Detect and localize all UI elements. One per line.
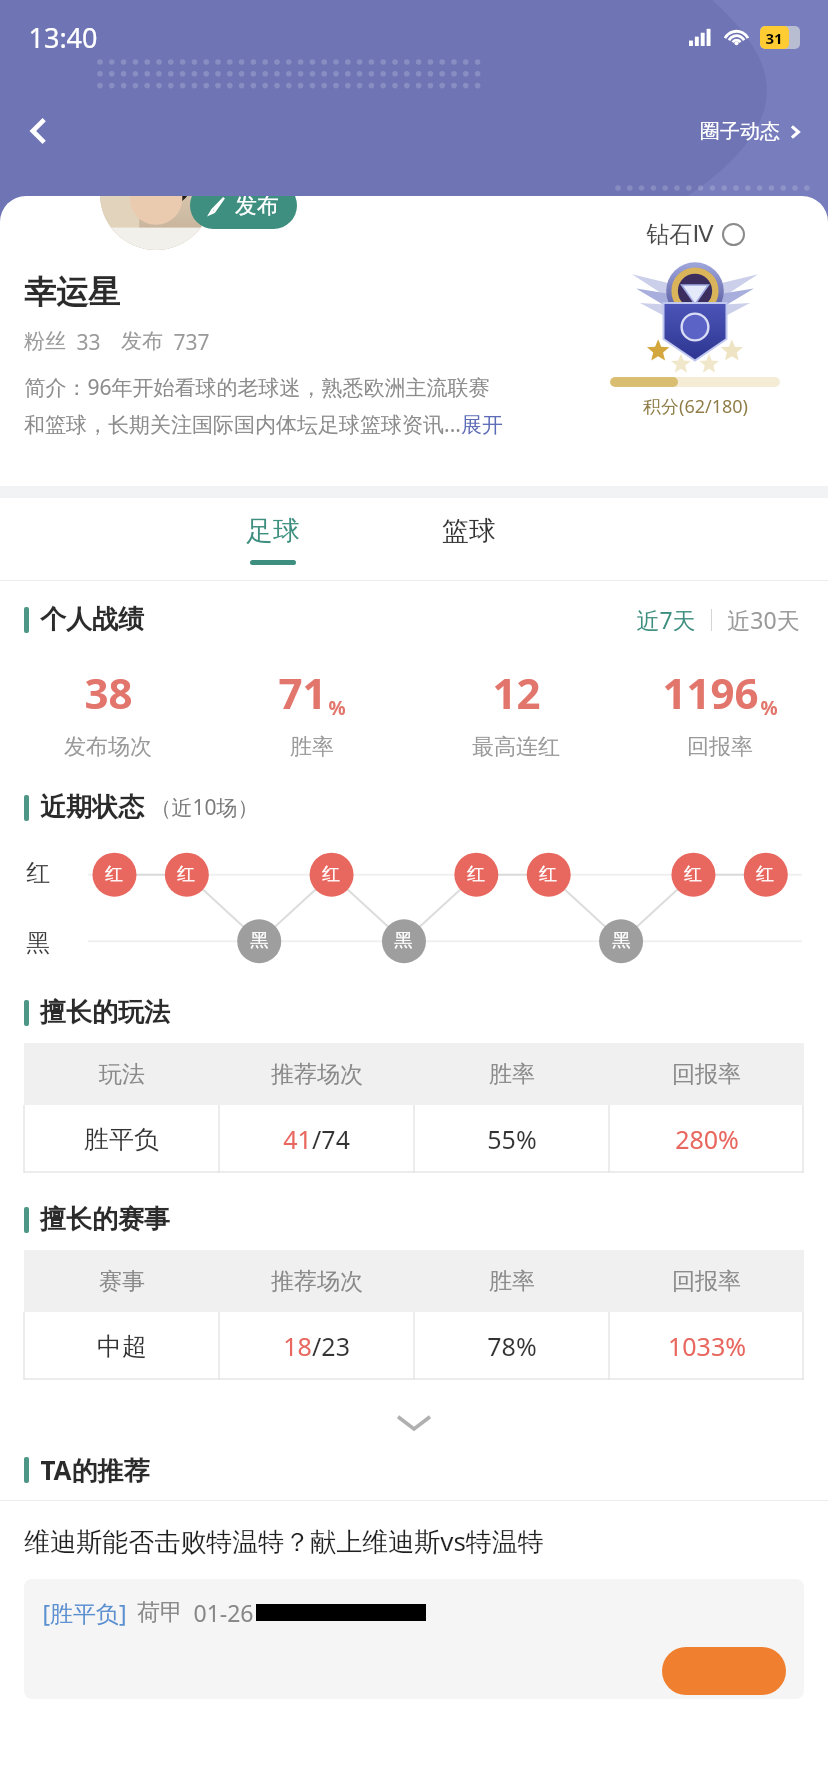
staticText: 发布: [235, 196, 279, 220]
staticText: 维迪斯能否击败特温特？献上维迪斯vs特温特: [24, 1523, 544, 1559]
staticText: 01-26: [193, 1597, 254, 1628]
staticText: 红: [26, 858, 50, 888]
staticText: 55%: [487, 1122, 537, 1156]
staticText: 黑: [250, 929, 268, 952]
staticText: %: [328, 695, 346, 721]
staticText: 胜率: [489, 1267, 535, 1296]
staticText: 展开: [461, 412, 503, 438]
staticText: 擅长的玩法: [40, 996, 170, 1029]
button[interactable]: 近30天: [723, 604, 804, 635]
staticText: 钻石Ⅳ: [646, 220, 714, 249]
staticText: 发布场次: [64, 733, 152, 761]
staticText: 1033%: [668, 1329, 746, 1363]
button[interactable]: View recommendation: [662, 1647, 786, 1695]
button[interactable]: Expand: [0, 1394, 828, 1450]
staticText: 回报率: [672, 1060, 741, 1089]
staticText: 71: [278, 664, 327, 721]
button[interactable]: [胜平负]: [24, 1579, 804, 1699]
staticText: 近30天: [727, 604, 800, 635]
staticText: 红: [467, 863, 485, 886]
staticText: 玩法: [99, 1060, 145, 1089]
button[interactable]: Avatar: [100, 196, 212, 250]
staticText: 发布: [121, 328, 163, 354]
staticText: 红: [322, 863, 340, 886]
staticText: 黑: [612, 929, 630, 952]
staticText: 推荐场次: [271, 1267, 363, 1296]
staticText: 个人战绩: [40, 603, 144, 636]
staticText: 荷甲: [137, 1598, 183, 1627]
staticText: 78%: [487, 1329, 537, 1363]
staticText: [胜平负]: [42, 1597, 127, 1628]
staticText: 33: [76, 328, 101, 357]
staticText: 近期状态: [40, 791, 144, 824]
button[interactable]: 近7天: [632, 604, 700, 635]
staticText: 简介：96年开始看球的老球迷，熟悉欧洲主流联赛: [24, 373, 490, 402]
staticText: 280%: [675, 1122, 739, 1156]
staticText: 红: [539, 863, 557, 886]
staticText: 最高连红: [472, 733, 560, 761]
staticText: 12: [492, 664, 541, 721]
button[interactable]: Back: [10, 102, 68, 160]
staticText: 回报率: [672, 1267, 741, 1296]
staticText: 和篮球，长期关注国际国内体坛足球篮球资讯...: [24, 410, 461, 439]
staticText: 回报率: [687, 733, 753, 761]
staticText: 红: [177, 863, 195, 886]
staticText: 18: [283, 1329, 312, 1363]
staticText: 幸运星: [24, 272, 120, 312]
button[interactable]: 发布: [190, 196, 297, 229]
staticText: 38: [84, 664, 133, 721]
staticText: %: [760, 695, 778, 721]
staticText: 推荐场次: [271, 1060, 363, 1089]
staticText: 足球: [246, 514, 300, 548]
button[interactable]: 圈子动态: [696, 113, 806, 150]
staticText: 31: [765, 28, 783, 48]
staticText: 积分(62/180): [643, 394, 748, 419]
staticText: /74: [312, 1122, 350, 1156]
staticText: 圈子动态: [700, 119, 780, 144]
staticText: 胜平负: [84, 1124, 159, 1155]
staticText: 胜率: [489, 1060, 535, 1089]
staticText: 红: [756, 863, 774, 886]
staticText: TA的推荐: [40, 1452, 150, 1488]
staticText: 红: [105, 863, 123, 886]
staticText: 中超: [97, 1331, 147, 1362]
button[interactable]: 展开: [461, 412, 503, 438]
staticText: 近7天: [636, 604, 696, 635]
staticText: 黑: [394, 929, 412, 952]
staticText: 胜率: [290, 733, 334, 761]
staticText: /23: [312, 1329, 350, 1363]
button[interactable]: 足球: [228, 514, 318, 565]
staticText: 篮球: [442, 514, 496, 548]
staticText: 737: [173, 328, 210, 357]
button[interactable]: 钻石Ⅳ: [646, 220, 745, 249]
staticText: 1196: [662, 664, 759, 721]
staticText: 41: [283, 1122, 312, 1156]
staticText: 黑: [26, 928, 50, 958]
staticText: 13:40: [28, 19, 98, 56]
button[interactable]: 篮球: [424, 514, 514, 565]
staticText: 赛事: [99, 1267, 145, 1296]
staticText: 红: [684, 863, 702, 886]
staticText: （近10场）: [150, 793, 259, 822]
staticText: 粉丝: [24, 328, 66, 354]
staticText: 擅长的赛事: [40, 1203, 170, 1236]
